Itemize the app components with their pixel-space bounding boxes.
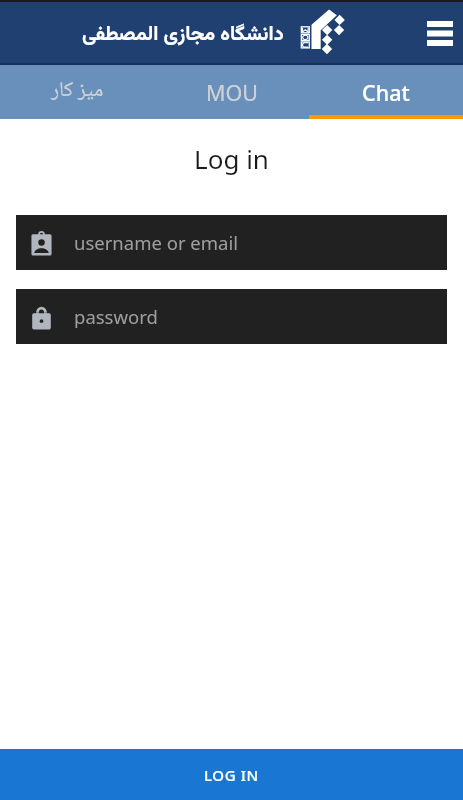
button[interactable]: Chat	[309, 65, 463, 119]
button[interactable]: میز کار	[0, 65, 155, 119]
button[interactable]: Open navigation menu	[421, 14, 459, 52]
button[interactable]: password	[16, 289, 447, 344]
staticText: دانشگاه مجازی المصطفی	[82, 19, 284, 50]
staticText: password	[74, 304, 158, 329]
staticText: MOU	[206, 78, 259, 107]
staticText: Log in	[0, 141, 463, 176]
staticText: میز کار	[51, 74, 104, 110]
button[interactable]: username or email	[16, 215, 447, 270]
staticText: username or email	[74, 230, 239, 255]
other: University logo	[298, 8, 348, 54]
staticText: Chat	[362, 78, 410, 107]
button[interactable]: MOU	[155, 65, 309, 119]
button[interactable]: LOG IN	[0, 749, 463, 800]
staticText: LOG IN	[204, 765, 259, 785]
